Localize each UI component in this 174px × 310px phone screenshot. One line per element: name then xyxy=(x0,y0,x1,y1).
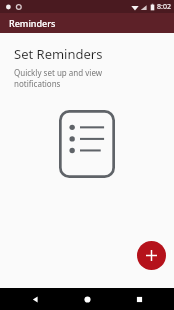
staticText: Quickly set up and view notifications xyxy=(14,67,103,89)
button[interactable]: Recent apps xyxy=(122,288,156,310)
staticText: Set Reminders xyxy=(14,45,103,63)
staticText: 8:02 xyxy=(157,2,171,12)
button[interactable]: Back xyxy=(18,288,52,310)
staticText: Reminders xyxy=(9,17,56,29)
button[interactable]: Home xyxy=(70,288,104,310)
button[interactable]: Add reminder xyxy=(137,241,166,270)
